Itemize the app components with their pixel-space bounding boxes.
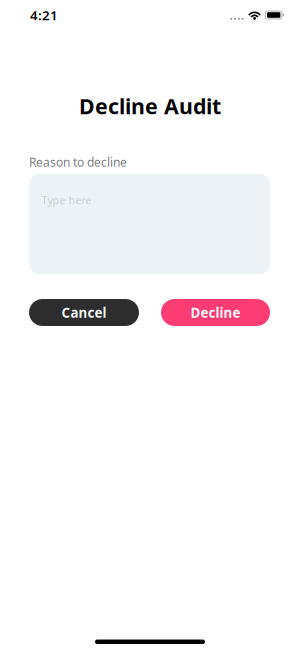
staticText: Reason to decline <box>29 154 127 170</box>
staticText: Cancel <box>61 304 106 321</box>
staticText: 4:21 <box>30 6 58 24</box>
button[interactable]: Cancel <box>29 299 139 326</box>
staticText: Decline <box>190 304 240 321</box>
button[interactable]: Decline <box>161 299 270 326</box>
staticText: Type here <box>41 193 91 207</box>
staticText: Decline Audit <box>79 92 221 120</box>
